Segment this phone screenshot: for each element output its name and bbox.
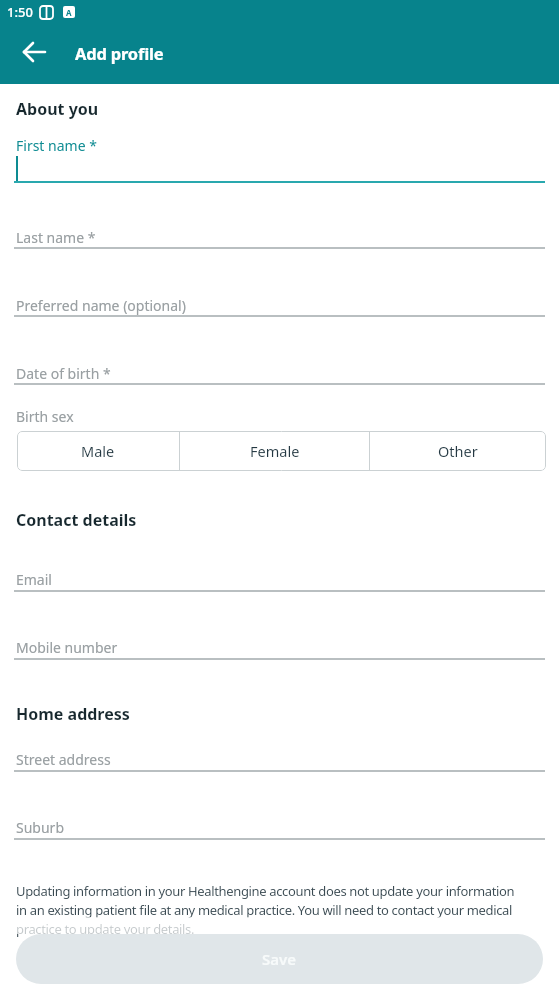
- staticText: Preferred name (optional): [16, 296, 186, 315]
- button[interactable]: Save: [16, 934, 543, 984]
- staticText: Save: [262, 949, 297, 969]
- staticText: Home address: [16, 703, 130, 725]
- staticText: 1:50: [7, 3, 33, 21]
- staticText: About you: [16, 98, 99, 120]
- staticText: Email: [16, 570, 52, 589]
- staticText: Date of birth *: [16, 364, 111, 383]
- staticText: Last name *: [16, 228, 96, 247]
- button[interactable]: Female: [180, 431, 369, 471]
- staticText: Street address: [16, 750, 111, 769]
- staticText: Male: [81, 441, 115, 461]
- staticText: Birth sex: [16, 407, 74, 426]
- staticText: Mobile number: [16, 638, 118, 657]
- button[interactable]: Other: [370, 431, 546, 471]
- staticText: Contact details: [16, 509, 137, 531]
- button[interactable]: Male: [17, 431, 179, 471]
- staticText: A: [66, 7, 72, 18]
- staticText: Female: [250, 441, 300, 461]
- staticText: First name *: [16, 136, 97, 155]
- staticText: Suburb: [16, 818, 64, 837]
- staticText: Other: [438, 441, 478, 461]
- button[interactable]: [14, 32, 54, 72]
- staticText: Add profile: [75, 42, 164, 64]
- staticText: Updating information in your Healthengin…: [16, 882, 515, 938]
